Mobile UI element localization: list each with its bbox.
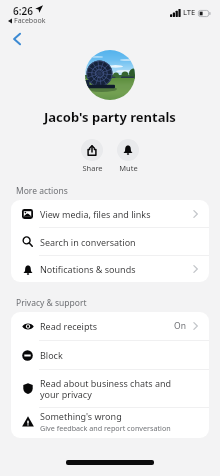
button[interactable]: Search in conversation <box>11 228 209 255</box>
button[interactable]: View media, files and links <box>11 200 209 227</box>
staticText: Facebook <box>14 16 46 26</box>
staticText: Give feedback and report conversation <box>40 423 171 433</box>
staticText: Search in conversation <box>40 236 136 248</box>
staticText: 6:26 <box>13 4 33 18</box>
button[interactable]: Profile photo <box>85 50 135 100</box>
staticText: Share <box>82 163 103 173</box>
staticText: On <box>174 320 186 332</box>
staticText: Mute <box>119 163 138 173</box>
staticText: Read about business chats and your priva… <box>40 377 172 401</box>
staticText: Jacob's party rentals <box>44 108 176 126</box>
button[interactable]: Back <box>6 28 27 49</box>
button[interactable]: Share <box>75 139 109 173</box>
staticText: Privacy & support <box>16 297 87 309</box>
button[interactable]: Something's wrong <box>11 408 209 438</box>
staticText: Block <box>40 349 63 361</box>
staticText: View media, files and links <box>40 208 151 220</box>
staticText: More actions <box>16 185 68 197</box>
button[interactable]: Read about business chats and your priva… <box>11 370 209 407</box>
staticText: Something's wrong <box>40 410 122 422</box>
button[interactable]: Read receipts <box>11 312 209 340</box>
button[interactable]: Notifications & sounds <box>11 256 209 282</box>
button[interactable]: Mute <box>111 139 145 173</box>
staticText: Read receipts <box>40 320 98 332</box>
staticText: Notifications & sounds <box>40 263 136 275</box>
staticText: LTE <box>183 7 196 17</box>
button[interactable]: Block <box>11 341 209 369</box>
